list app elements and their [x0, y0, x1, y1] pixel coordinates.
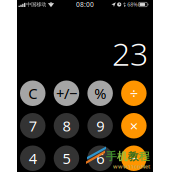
- button[interactable]: %: [87, 80, 113, 106]
- staticText: 教: [128, 150, 139, 163]
- button[interactable]: 7: [20, 113, 45, 138]
- staticText: 68%: [127, 1, 137, 8]
- button[interactable]: 6: [87, 145, 113, 171]
- staticText: 4: [29, 148, 37, 168]
- button[interactable]: +/−: [54, 80, 79, 106]
- staticText: 23: [112, 32, 148, 74]
- staticText: ÷: [130, 83, 138, 103]
- staticText: 中国移动: [26, 1, 46, 8]
- staticText: 08:00: [76, 0, 94, 9]
- staticText: 9: [96, 116, 104, 135]
- staticText: 8: [62, 116, 70, 135]
- button[interactable]: ×: [121, 113, 147, 138]
- staticText: 6: [96, 148, 104, 168]
- button[interactable]: 5: [54, 145, 79, 171]
- staticText: −: [130, 148, 138, 168]
- staticText: +/−: [56, 83, 77, 103]
- button[interactable]: −: [121, 145, 147, 171]
- staticText: ×: [130, 116, 138, 135]
- staticText: C: [28, 83, 37, 103]
- staticText: 程: [139, 150, 150, 163]
- staticText: %: [94, 83, 106, 103]
- staticText: 手: [106, 150, 117, 163]
- staticText: 5: [62, 148, 70, 168]
- staticText: 机: [117, 150, 128, 163]
- button[interactable]: 8: [54, 113, 79, 138]
- button[interactable]: 4: [20, 145, 45, 171]
- staticText: 7: [29, 116, 37, 135]
- button[interactable]: 9: [87, 113, 113, 138]
- button[interactable]: C: [20, 80, 45, 106]
- button[interactable]: ÷: [121, 80, 147, 106]
- staticText: www.11cn.Net: [113, 163, 150, 170]
